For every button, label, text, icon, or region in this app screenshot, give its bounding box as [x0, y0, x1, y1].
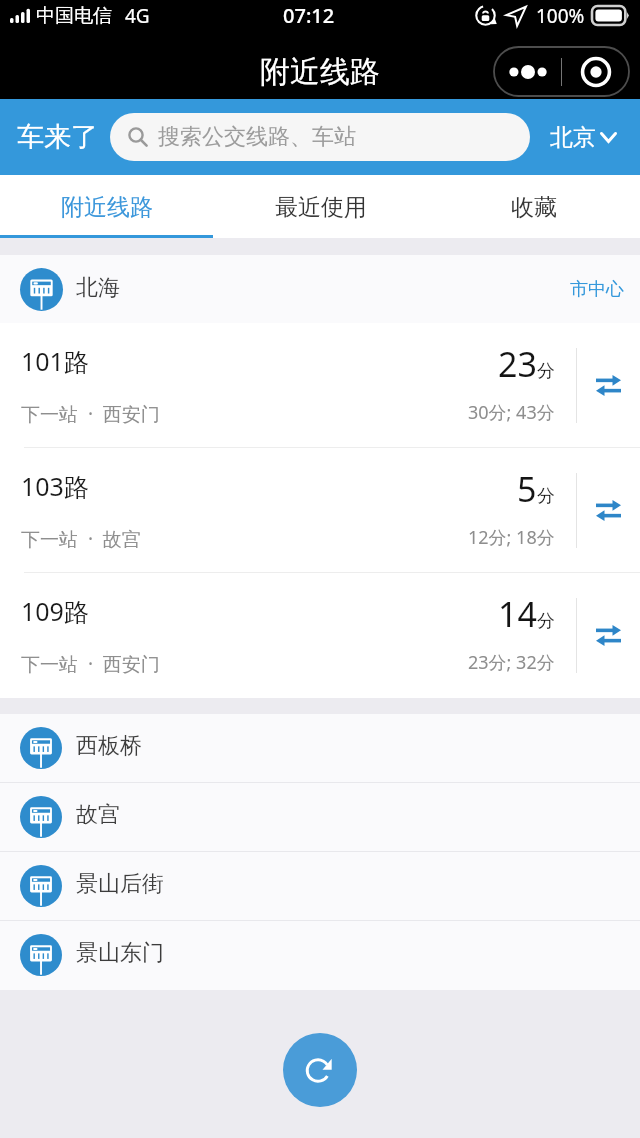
- staticText: 分: [537, 485, 555, 508]
- staticText: 搜索公交线路、车站: [158, 123, 356, 151]
- staticText: 23分; 32分: [468, 650, 555, 675]
- button[interactable]: 收藏: [427, 175, 640, 235]
- button[interactable]: Refresh: [283, 1033, 357, 1107]
- button[interactable]: 附近线路: [0, 175, 214, 235]
- staticText: 100%: [536, 3, 585, 29]
- staticText: 北京: [550, 123, 596, 152]
- staticText: 30分; 43分: [468, 400, 555, 425]
- staticText: 109路: [21, 594, 89, 628]
- staticText: 分: [537, 610, 555, 633]
- button[interactable]: Switch direction: [577, 573, 640, 698]
- staticText: 景山东门: [76, 939, 164, 967]
- staticText: 分: [537, 360, 555, 383]
- staticText: 12分; 18分: [468, 525, 555, 550]
- button[interactable]: 北京: [544, 115, 640, 160]
- staticText: 收藏: [511, 193, 557, 222]
- staticText: 23: [498, 341, 537, 387]
- staticText: 故宫: [76, 801, 120, 829]
- staticText: 中国电信: [36, 4, 112, 28]
- staticText: 4G: [125, 3, 150, 29]
- button[interactable]: 北海: [0, 255, 640, 323]
- staticText: 14: [498, 591, 537, 637]
- staticText: 下一站 · 故宫: [21, 526, 141, 552]
- staticText: 下一站 · 西安门: [21, 401, 160, 427]
- staticText: 5: [517, 466, 537, 512]
- button[interactable]: 西板桥: [0, 714, 640, 783]
- staticText: 07:12: [283, 2, 335, 29]
- staticText: 车来了: [17, 120, 98, 154]
- button[interactable]: 103路: [0, 448, 640, 573]
- button[interactable]: 故宫: [0, 783, 640, 852]
- button[interactable]: 搜索公交线路、车站: [110, 113, 530, 161]
- button[interactable]: 景山东门: [0, 921, 640, 990]
- staticText: 景山后街: [76, 870, 164, 898]
- staticText: 西板桥: [76, 732, 142, 760]
- staticText: 103路: [21, 469, 89, 503]
- button[interactable]: 109路: [0, 573, 640, 698]
- staticText: 101路: [21, 344, 89, 378]
- staticText: 北海: [76, 274, 120, 302]
- button[interactable]: Close: [562, 47, 629, 96]
- button[interactable]: Switch direction: [577, 448, 640, 573]
- staticText: 附近线路: [260, 53, 380, 91]
- staticText: 附近线路: [61, 193, 153, 222]
- button[interactable]: Switch direction: [577, 323, 640, 448]
- button[interactable]: More: [494, 47, 561, 96]
- staticText: 最近使用: [275, 193, 367, 222]
- button[interactable]: 景山后街: [0, 852, 640, 921]
- staticText: 下一站 · 西安门: [21, 651, 160, 677]
- staticText: 市中心: [570, 278, 624, 301]
- button[interactable]: 最近使用: [214, 175, 427, 235]
- button[interactable]: 101路: [0, 323, 640, 448]
